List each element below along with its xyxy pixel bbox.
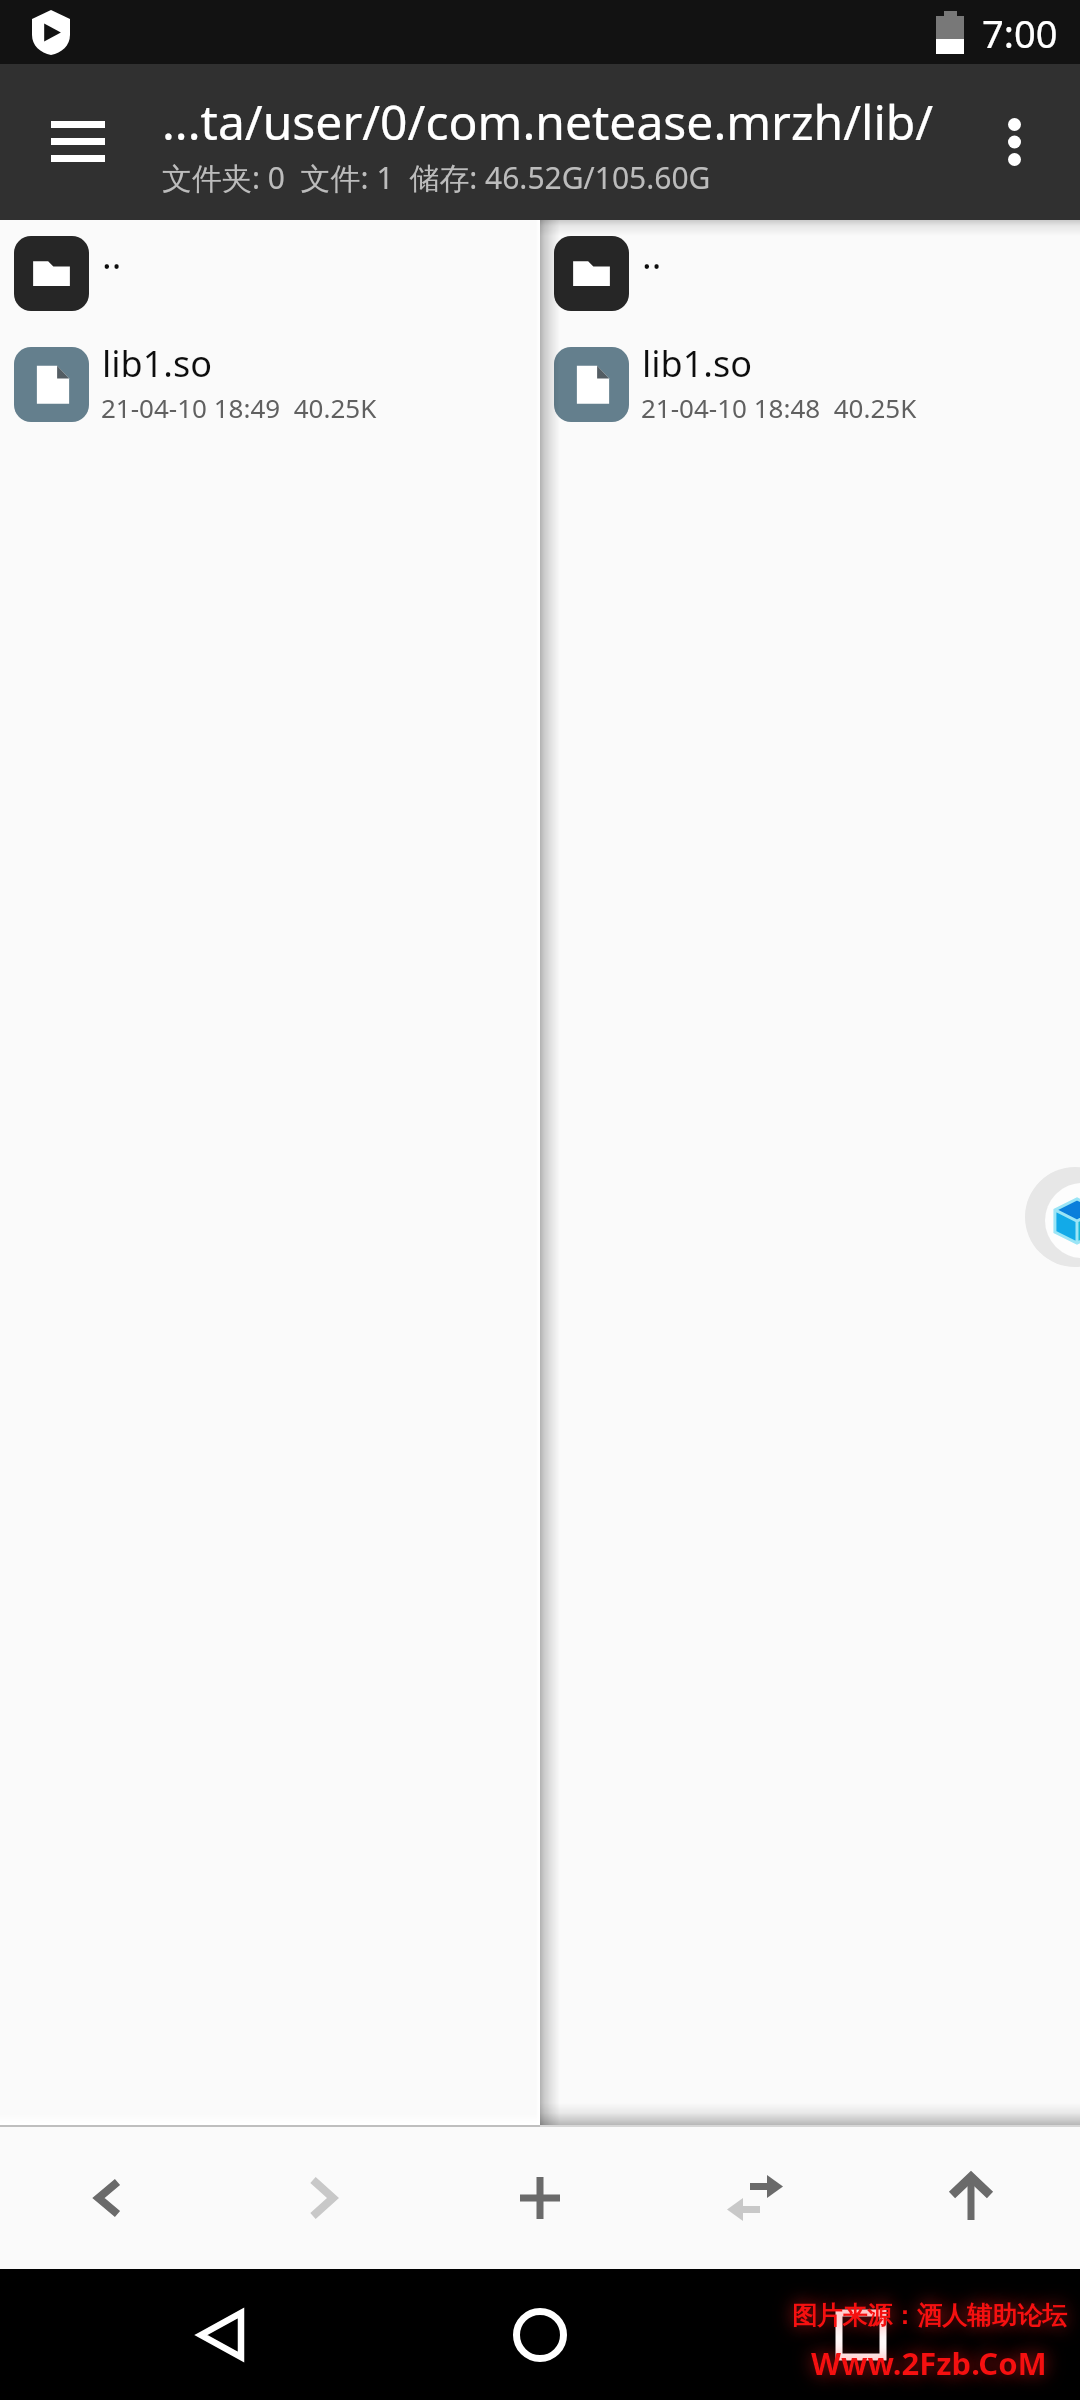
staticText: 7:00: [982, 7, 1058, 59]
button[interactable]: lib1.so: [540, 331, 1080, 442]
button[interactable]: Back: [131, 2269, 311, 2400]
button[interactable]: Recent apps: [771, 2269, 951, 2400]
button[interactable]: More options: [955, 64, 1080, 220]
button[interactable]: New folder: [468, 2127, 612, 2269]
button[interactable]: Home: [450, 2269, 630, 2400]
button[interactable]: Open navigation drawer: [0, 64, 152, 220]
staticText: 21-04-10 18:49 40.25K: [101, 390, 377, 425]
button[interactable]: ..: [540, 220, 1080, 331]
button[interactable]: Back: [36, 2127, 180, 2269]
staticText: Www.2Fzb.CoM: [811, 2342, 1047, 2384]
staticText: ..: [642, 231, 662, 280]
staticText: lib1.so: [642, 339, 752, 388]
staticText: ..: [102, 231, 122, 280]
button[interactable]: App shortcut: [1025, 1167, 1080, 1267]
staticText: lib1.so: [102, 339, 212, 388]
staticText: ...ta/user/0/com.netease.mrzh/lib/: [162, 89, 934, 154]
button[interactable]: ..: [0, 220, 540, 331]
button[interactable]: lib1.so: [0, 331, 540, 442]
staticText: 文件夹: 0 文件: 1 储存: 46.52G/105.60G: [162, 157, 711, 198]
button[interactable]: Swap panes: [683, 2127, 827, 2269]
staticText: 图片来源：酒人辅助论坛: [792, 2300, 1067, 2331]
button[interactable]: Forward: [251, 2127, 395, 2269]
staticText: 21-04-10 18:48 40.25K: [641, 390, 917, 425]
button[interactable]: Up: [899, 2127, 1043, 2269]
